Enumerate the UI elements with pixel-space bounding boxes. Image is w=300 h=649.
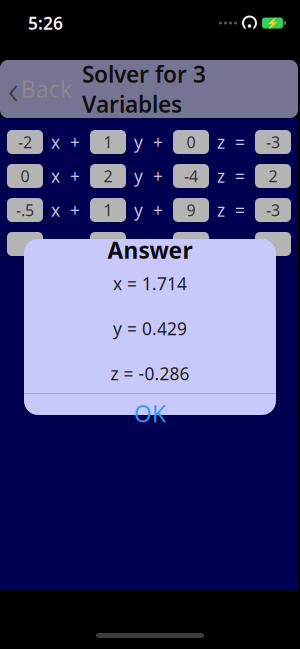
button[interactable] bbox=[173, 232, 209, 256]
button[interactable]: -4 bbox=[173, 164, 209, 188]
button[interactable]: -3 bbox=[255, 130, 291, 154]
staticText: x bbox=[51, 164, 60, 187]
staticText: -2 bbox=[18, 131, 32, 153]
button[interactable]: 1 bbox=[90, 130, 126, 154]
staticText: z bbox=[217, 130, 225, 153]
staticText: -3 bbox=[266, 131, 280, 153]
staticText: Back bbox=[21, 74, 72, 104]
staticText: x bbox=[51, 130, 60, 153]
staticText: = bbox=[235, 164, 245, 187]
button[interactable] bbox=[255, 232, 291, 256]
button[interactable]: 2 bbox=[255, 164, 291, 188]
staticText: + bbox=[153, 164, 163, 187]
button[interactable] bbox=[90, 232, 126, 256]
button[interactable]: -2 bbox=[7, 130, 43, 154]
button[interactable]: 0 bbox=[7, 164, 43, 188]
staticText: 1 bbox=[103, 199, 112, 221]
staticText: 0 bbox=[186, 131, 195, 153]
staticText: ⚡ bbox=[266, 17, 279, 29]
staticText: = bbox=[235, 130, 245, 153]
staticText: 5:26 bbox=[28, 11, 63, 34]
staticText: = bbox=[235, 232, 245, 255]
staticText: + bbox=[153, 232, 163, 255]
staticText: 1 bbox=[103, 131, 112, 153]
button[interactable]: -3 bbox=[255, 198, 291, 222]
staticText: z = -0.286 bbox=[110, 362, 189, 385]
staticText: = bbox=[235, 198, 245, 221]
button[interactable]: -.5 bbox=[7, 198, 43, 222]
staticText: Solver for 3 Variables bbox=[82, 59, 206, 119]
staticText: y bbox=[134, 130, 143, 153]
button[interactable]: 1 bbox=[90, 198, 126, 222]
staticText: z bbox=[217, 232, 225, 255]
staticText: 0 bbox=[20, 165, 29, 187]
staticText: x bbox=[51, 198, 60, 221]
staticText: 2 bbox=[103, 165, 112, 187]
staticText: 2 bbox=[268, 165, 277, 187]
staticText: Answer bbox=[107, 235, 192, 265]
staticText: -4 bbox=[184, 165, 198, 187]
button[interactable] bbox=[7, 232, 43, 256]
staticText: y = 0.429 bbox=[113, 317, 187, 340]
staticText: z bbox=[217, 164, 225, 187]
button[interactable]: 0 bbox=[173, 130, 209, 154]
button[interactable]: OK bbox=[24, 394, 276, 433]
staticText: + bbox=[70, 198, 80, 221]
staticText: y bbox=[134, 198, 143, 221]
staticText: x bbox=[51, 232, 60, 255]
staticText: + bbox=[70, 232, 80, 255]
staticText: ‹ bbox=[8, 62, 19, 115]
staticText: OK bbox=[134, 398, 166, 429]
staticText: + bbox=[153, 198, 163, 221]
button[interactable]: 9 bbox=[173, 198, 209, 222]
staticText: + bbox=[70, 164, 80, 187]
staticText: + bbox=[70, 130, 80, 153]
staticText: 9 bbox=[186, 199, 195, 221]
button[interactable]: 2 bbox=[90, 164, 126, 188]
staticText: y bbox=[134, 232, 143, 255]
staticText: + bbox=[153, 130, 163, 153]
button[interactable]: ‹ bbox=[0, 56, 72, 121]
staticText: -.5 bbox=[16, 199, 34, 221]
staticText: y bbox=[134, 164, 143, 187]
staticText: -3 bbox=[266, 199, 280, 221]
staticText: z bbox=[217, 198, 225, 221]
staticText: x = 1.714 bbox=[113, 272, 187, 295]
